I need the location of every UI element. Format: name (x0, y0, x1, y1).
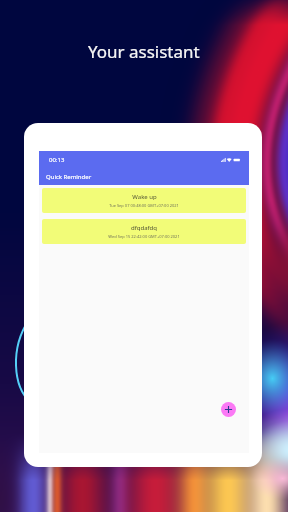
staticText: Tue Sep 07 00:48:00 GMT+07:00 2021 (109, 203, 179, 208)
staticText: Wed Sep 15 22:42:00 GMT+07:00 2021 (108, 234, 180, 239)
staticText: Quick Reminder (46, 173, 92, 181)
staticText: Your assistant (88, 40, 200, 63)
staticText: dfqdafdq (131, 224, 157, 232)
staticText: 00:13 (49, 156, 65, 164)
button[interactable]: Add reminder (221, 402, 236, 417)
button[interactable]: Wake up (42, 188, 246, 213)
staticText: Wake up (132, 193, 157, 201)
button[interactable]: dfqdafdq (42, 219, 246, 244)
